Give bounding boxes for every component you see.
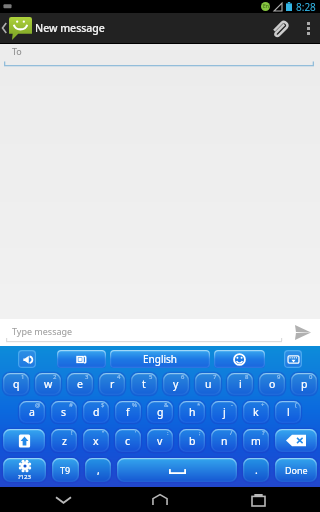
button[interactable]: More options: [296, 13, 320, 43]
staticText: x: [93, 434, 99, 448]
staticText: b: [189, 434, 196, 448]
staticText: 8:28: [296, 0, 316, 13]
staticText: n: [221, 434, 228, 448]
staticText: 2: [53, 373, 57, 381]
button[interactable]: Send: [286, 319, 320, 346]
staticText: .: [255, 463, 258, 477]
staticText: y: [173, 377, 179, 391]
staticText: ;: [199, 429, 201, 437]
button[interactable]: shift: [3, 429, 45, 452]
staticText: c: [125, 434, 131, 448]
staticText: &: [164, 401, 169, 409]
button[interactable]: @: [19, 401, 45, 423]
staticText: w: [44, 377, 53, 391]
button[interactable]: del: [275, 429, 317, 452]
button[interactable]: %: [115, 401, 141, 423]
staticText: r: [110, 377, 115, 391]
button[interactable]: ?: [243, 429, 269, 452]
button[interactable]: ': [115, 429, 141, 452]
button[interactable]: Back: [28, 487, 98, 512]
staticText: 5: [149, 373, 153, 381]
button[interactable]: Done: [275, 458, 317, 482]
button[interactable]: T9: [52, 458, 79, 482]
staticText: (: [295, 401, 297, 409]
staticText: 4: [117, 373, 121, 381]
staticText: j: [223, 405, 226, 419]
staticText: :: [167, 429, 169, 437]
staticText: q: [13, 377, 20, 391]
button[interactable]: ": [83, 429, 109, 452]
button[interactable]: 7: [195, 373, 221, 395]
staticText: T9: [60, 464, 71, 476]
staticText: o: [269, 377, 276, 391]
staticText: h: [189, 405, 196, 419]
staticText: 8: [245, 373, 249, 381]
staticText: 3: [85, 373, 89, 381]
staticText: s: [61, 405, 67, 419]
staticText: $: [101, 401, 105, 409]
staticText: u: [205, 377, 212, 391]
button[interactable]: /: [211, 429, 237, 452]
staticText: ": [102, 429, 105, 437]
staticText: 9: [277, 373, 281, 381]
staticText: Type message: [12, 325, 73, 337]
button[interactable]: Home: [125, 487, 195, 512]
staticText: English: [143, 352, 178, 366]
staticText: -: [231, 401, 233, 409]
button[interactable]: ;: [179, 429, 205, 452]
staticText: ': [135, 429, 137, 437]
button[interactable]: space: [117, 458, 237, 482]
button[interactable]: -: [211, 401, 237, 423]
staticText: %: [132, 401, 137, 409]
staticText: i: [239, 377, 242, 391]
button[interactable]: $: [83, 401, 109, 423]
button[interactable]: 4: [99, 373, 125, 395]
button[interactable]: &: [147, 401, 173, 423]
staticText: e: [77, 377, 83, 391]
staticText: t: [142, 377, 146, 391]
button[interactable]: 8: [227, 373, 253, 395]
button[interactable]: ,: [85, 458, 111, 482]
staticText: 0: [309, 373, 313, 381]
staticText: p: [301, 377, 308, 391]
button[interactable]: 5: [131, 373, 157, 395]
button[interactable]: Emoji: [214, 350, 265, 368]
button[interactable]: :: [147, 429, 173, 452]
button[interactable]: sym: [3, 458, 46, 482]
staticText: /: [230, 429, 233, 437]
staticText: ?: [262, 429, 265, 437]
staticText: En: [263, 3, 269, 10]
button[interactable]: 2: [35, 373, 61, 395]
button[interactable]: 9: [259, 373, 285, 395]
staticText: m: [251, 434, 261, 448]
button[interactable]: (: [275, 401, 301, 423]
button[interactable]: *: [179, 401, 205, 423]
button[interactable]: 0: [291, 373, 317, 395]
button[interactable]: !: [51, 429, 77, 452]
staticText: #: [69, 401, 73, 409]
button[interactable]: Attach: [262, 13, 296, 43]
staticText: +: [261, 401, 265, 409]
button[interactable]: 3: [67, 373, 93, 395]
staticText: g: [157, 405, 164, 419]
button[interactable]: 1: [3, 373, 29, 395]
button[interactable]: Clipboard: [57, 350, 106, 368]
staticText: Done: [285, 464, 308, 476]
staticText: f: [126, 405, 130, 419]
staticText: New message: [35, 21, 105, 35]
button[interactable]: +: [243, 401, 269, 423]
button[interactable]: 6: [163, 373, 189, 395]
button[interactable]: Navigate up: [0, 13, 32, 43]
button[interactable]: Recent apps: [223, 487, 293, 512]
button[interactable]: Hide keyboard: [284, 350, 302, 368]
staticText: z: [62, 434, 67, 448]
staticText: ,: [97, 463, 100, 477]
button[interactable]: #: [51, 401, 77, 423]
staticText: @: [35, 401, 41, 409]
button[interactable]: English: [110, 350, 210, 368]
staticText: !: [71, 429, 73, 437]
staticText: 6: [181, 373, 185, 381]
button[interactable]: Voice input: [18, 350, 36, 368]
staticText: 7: [213, 373, 217, 381]
button[interactable]: .: [243, 458, 269, 482]
